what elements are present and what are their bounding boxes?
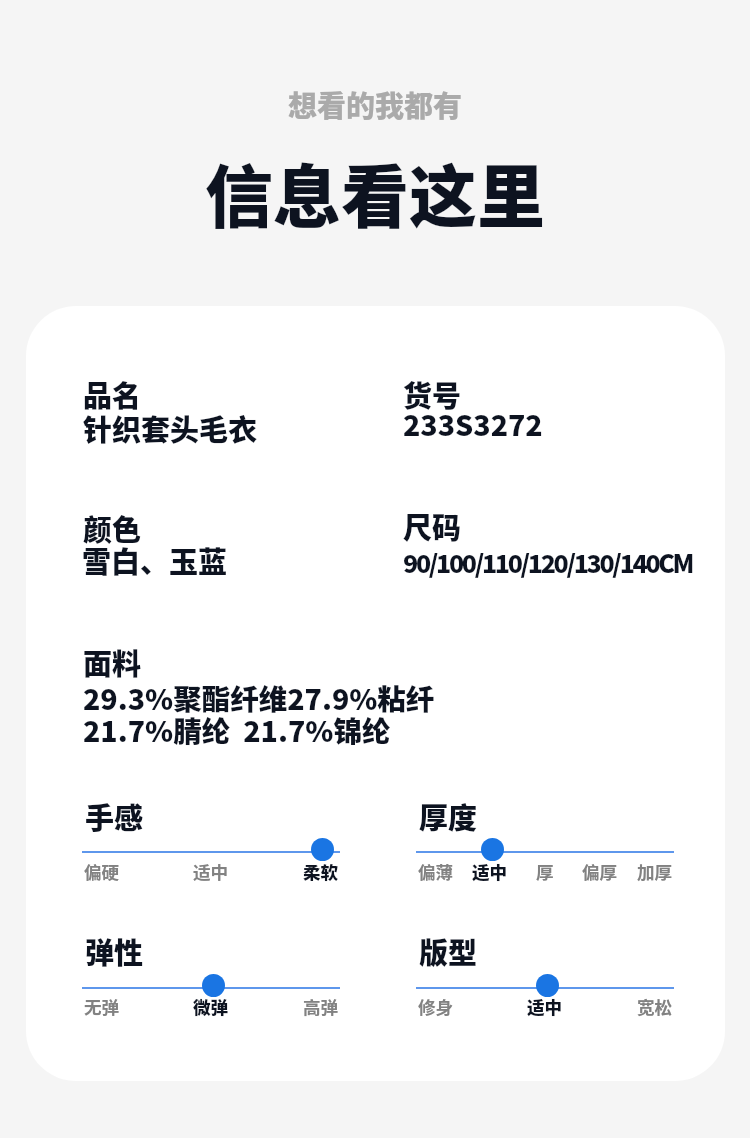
staticText: 加厚 — [637, 859, 673, 884]
staticText: 宽松 — [637, 994, 673, 1019]
staticText: 厚度 — [419, 795, 478, 837]
staticText: 偏厚 — [582, 859, 618, 884]
staticText: 偏硬 — [84, 859, 120, 884]
button[interactable]: 偏硬 — [82, 857, 122, 886]
staticText: 手感 — [85, 795, 144, 837]
button[interactable]: 适中 — [470, 857, 510, 886]
button[interactable]: 弹性 — [202, 974, 225, 997]
staticText: 修身 — [418, 994, 454, 1019]
button[interactable]: 适中 — [525, 992, 565, 1021]
button[interactable]: 加厚 — [635, 857, 675, 886]
button[interactable]: 高弹 — [301, 992, 341, 1021]
button[interactable]: 偏厚 — [580, 857, 620, 886]
button[interactable]: 厚度 — [481, 838, 504, 861]
staticText: 厚 — [536, 859, 554, 884]
staticText: 90/100/110/120/130/140CM — [403, 544, 693, 580]
staticText: 偏薄 — [418, 859, 454, 884]
staticText: 雪白、玉蓝 — [82, 539, 228, 581]
button[interactable]: 厚 — [534, 857, 556, 886]
button[interactable]: 版型 — [536, 974, 559, 997]
staticText: 微弹 — [193, 994, 229, 1019]
button[interactable]: 宽松 — [635, 992, 675, 1021]
staticText: 适中 — [193, 859, 229, 884]
staticText: 颜色 — [83, 507, 142, 549]
staticText: 无弹 — [84, 994, 120, 1019]
button[interactable]: 适中 — [191, 857, 231, 886]
button[interactable]: 修身 — [416, 992, 456, 1021]
staticText: 柔软 — [303, 859, 339, 884]
staticText: 尺码 — [403, 505, 462, 547]
staticText: 品名 — [83, 373, 142, 415]
button[interactable]: 柔软 — [301, 857, 341, 886]
staticText: 货号 — [403, 373, 462, 415]
staticText: 21.7%腈纶 21.7%锦纶 — [83, 709, 391, 750]
staticText: 想看的我都有 — [0, 83, 750, 125]
staticText: 信息看这里 — [0, 143, 750, 241]
staticText: 高弹 — [303, 994, 339, 1019]
button[interactable]: 无弹 — [82, 992, 122, 1021]
button[interactable]: 微弹 — [191, 992, 231, 1021]
staticText: 针织套头毛衣 — [83, 407, 258, 449]
staticText: 面料 — [83, 641, 142, 683]
staticText: 233S3272 — [403, 403, 543, 444]
button[interactable]: 手感 — [311, 838, 334, 861]
button[interactable]: 偏薄 — [416, 857, 456, 886]
staticText: 适中 — [472, 859, 508, 884]
staticText: 适中 — [527, 994, 563, 1019]
staticText: 29.3%聚酯纤维27.9%粘纤 — [83, 677, 435, 718]
staticText: 弹性 — [85, 930, 144, 972]
staticText: 版型 — [419, 930, 478, 972]
